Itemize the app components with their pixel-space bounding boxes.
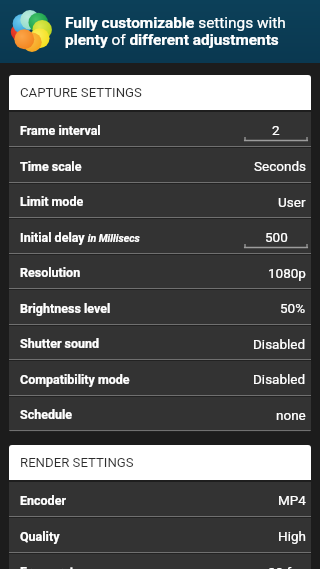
staticText: Disabled xyxy=(253,371,306,387)
staticText: Quality xyxy=(20,529,60,544)
staticText: 50% xyxy=(280,300,306,316)
staticText: Limit mode xyxy=(20,194,84,209)
button[interactable]: Quality xyxy=(9,518,311,554)
button[interactable]: Encoder xyxy=(9,482,311,518)
staticText: Schedule xyxy=(20,407,73,422)
staticText: Fully customizable settings with plenty … xyxy=(65,14,286,49)
staticText: Encoder xyxy=(20,493,66,508)
staticText: RENDER SETTINGS xyxy=(20,455,134,470)
staticText: Frame rate xyxy=(20,564,81,569)
staticText: Time scale xyxy=(20,159,82,174)
staticText: Disabled xyxy=(253,336,306,352)
staticText: High xyxy=(278,528,306,544)
staticText: Brightness level xyxy=(20,301,111,316)
button[interactable]: CAPTURE SETTINGS xyxy=(9,75,311,112)
button[interactable]: Frame rate xyxy=(9,554,311,569)
button[interactable]: Initial delay in Millisecs xyxy=(9,219,311,255)
staticText: Frame interval xyxy=(20,123,101,138)
staticText: MP4 xyxy=(278,492,306,508)
staticText: 1080p xyxy=(268,265,306,281)
button[interactable]: Frame interval xyxy=(9,112,311,148)
staticText: Resolution xyxy=(20,265,81,280)
button[interactable]: RENDER SETTINGS xyxy=(9,445,311,482)
staticText: 2 xyxy=(272,122,280,138)
button[interactable]: Resolution xyxy=(9,255,311,290)
staticText: none xyxy=(276,407,306,423)
staticText: Compatibility mode xyxy=(20,372,130,387)
button[interactable]: Fully customizable settings with plenty … xyxy=(0,0,320,63)
staticText: 500 xyxy=(265,229,288,245)
staticText: Seconds xyxy=(254,158,306,174)
button[interactable]: Schedule xyxy=(9,397,311,432)
staticText: CAPTURE SETTINGS xyxy=(20,85,142,100)
staticText: Shutter sound xyxy=(20,336,100,351)
button[interactable]: Limit mode xyxy=(9,184,311,219)
button[interactable]: Time scale xyxy=(9,148,311,184)
staticText: User xyxy=(278,194,306,210)
staticText: 30 fps xyxy=(268,564,306,569)
staticText: Initial delay in Millisecs xyxy=(20,230,140,245)
button[interactable]: Compatibility mode xyxy=(9,361,311,397)
button[interactable]: Shutter sound xyxy=(9,326,311,361)
button[interactable]: Brightness level xyxy=(9,290,311,326)
